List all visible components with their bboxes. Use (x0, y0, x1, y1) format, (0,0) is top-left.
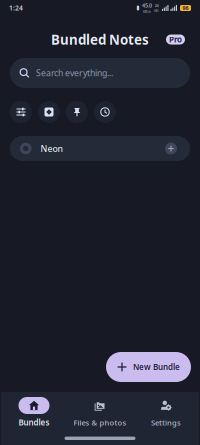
button[interactable]: Pinned (66, 101, 88, 123)
button[interactable]: Recent (94, 101, 116, 123)
staticText: KB (154, 8, 159, 13)
staticText: New Bundle (133, 362, 180, 372)
staticText: Neon (40, 142, 63, 154)
staticText: KB/s (143, 9, 151, 14)
staticText: Search everything... (36, 67, 113, 79)
button[interactable]: Pro (166, 34, 185, 44)
staticText: 24 (154, 3, 158, 8)
button[interactable]: Search everything... (10, 58, 190, 88)
button[interactable]: Bundles (38, 101, 60, 123)
staticText: 96 (182, 4, 188, 12)
staticText: Pro (169, 34, 182, 45)
button[interactable]: Settings (133, 397, 199, 428)
button[interactable]: Bundles (1, 397, 67, 428)
staticText: Bundles (18, 417, 49, 428)
staticText: 1:24 (9, 4, 23, 12)
button[interactable]: Files & photos (67, 397, 133, 428)
staticText: 45.0 (142, 2, 152, 9)
button[interactable]: Filter (10, 101, 32, 123)
staticText: Files & photos (73, 417, 126, 428)
button[interactable]: Neon (10, 136, 190, 161)
button[interactable]: New Bundle (106, 352, 191, 382)
staticText: Bundled Notes (51, 30, 149, 49)
staticText: Settings (151, 417, 181, 428)
